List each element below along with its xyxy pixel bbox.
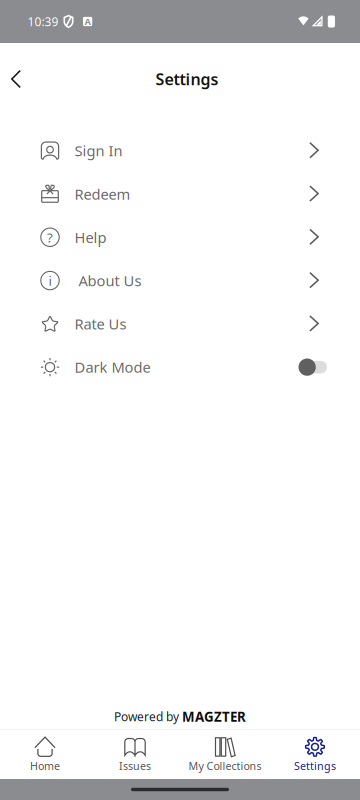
- staticText: Rate Us: [74, 314, 126, 334]
- staticText: Redeem: [74, 184, 130, 204]
- staticText: ?: [47, 228, 53, 246]
- button[interactable]: Back: [0, 57, 21, 101]
- button[interactable]: Sign In: [0, 129, 360, 172]
- button[interactable]: Dark Mode: [298, 357, 327, 377]
- button[interactable]: Dark Mode: [0, 345, 360, 389]
- staticText: My Collections: [188, 759, 261, 773]
- staticText: Home: [30, 759, 60, 773]
- button[interactable]: Redeem: [0, 172, 360, 216]
- staticText: Sign In: [74, 141, 122, 160]
- button[interactable]: My Collections: [180, 730, 270, 779]
- button[interactable]: Home: [0, 730, 90, 779]
- staticText: About Us: [78, 271, 141, 290]
- staticText: Settings: [155, 68, 218, 90]
- staticText: Settings: [294, 759, 336, 773]
- staticText: 10:39: [27, 13, 58, 29]
- staticText: Help: [74, 227, 106, 247]
- staticText: i: [48, 272, 51, 289]
- staticText: A: [85, 15, 91, 28]
- staticText: Powered by: [114, 709, 182, 725]
- button[interactable]: Rate Us: [0, 302, 360, 345]
- button[interactable]: ?: [0, 216, 360, 259]
- button[interactable]: Settings: [270, 730, 360, 779]
- staticText: Issues: [119, 759, 151, 773]
- staticText: Dark Mode: [74, 357, 150, 377]
- staticText: MAGZTER: [182, 708, 246, 725]
- button[interactable]: i: [0, 259, 360, 302]
- button[interactable]: Issues: [90, 730, 180, 779]
